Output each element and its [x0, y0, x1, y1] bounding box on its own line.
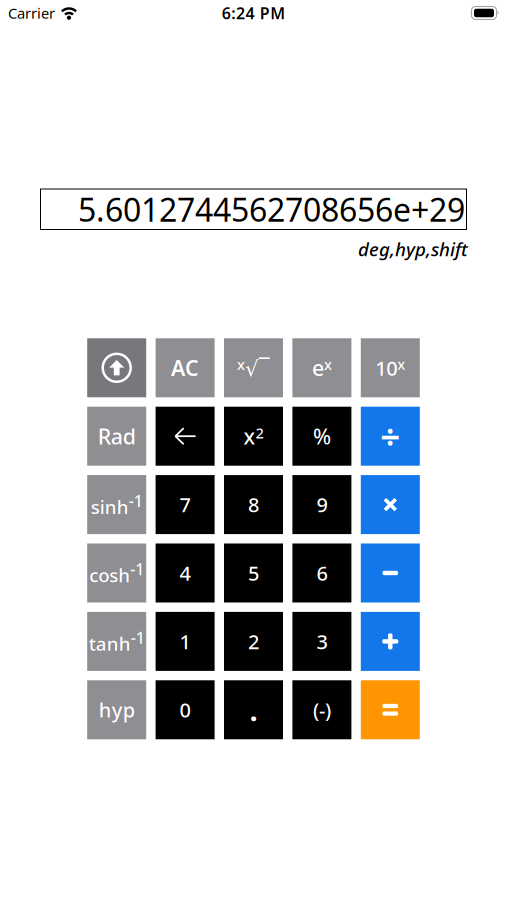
staticText: x2 — [243, 422, 263, 450]
staticText: Rad — [98, 422, 136, 450]
staticText: (-) — [313, 696, 331, 723]
staticText: 9 — [316, 491, 327, 518]
staticText: 5.6012744562708656e+29 — [78, 188, 465, 230]
button[interactable]: hyp — [87, 680, 146, 739]
button[interactable]: e to the x — [292, 338, 351, 397]
button[interactable]: Inverse hyperbolic tangent — [87, 612, 146, 671]
staticText: % — [313, 422, 331, 450]
button[interactable]: x-th root — [224, 338, 283, 397]
staticText: sinh-1 — [91, 490, 143, 519]
button[interactable]: 6 — [292, 543, 351, 602]
staticText: . — [249, 690, 257, 729]
staticText: 2 — [248, 628, 259, 655]
staticText: 7 — [180, 491, 191, 518]
staticText: 10x — [375, 354, 405, 381]
button[interactable]: Rad — [87, 407, 146, 466]
button[interactable]: Inverse hyperbolic cosine — [87, 543, 146, 602]
staticText: cosh-1 — [89, 558, 144, 587]
button[interactable]: 3 — [292, 612, 351, 671]
button[interactable]: Minus — [361, 543, 420, 602]
button[interactable]: 0 — [156, 680, 215, 739]
button[interactable]: Decimal point — [224, 680, 283, 739]
button[interactable]: 10 to the x — [361, 338, 420, 397]
button[interactable]: Equals — [361, 680, 420, 739]
staticText: ÷ — [380, 413, 400, 459]
button[interactable]: Percent — [292, 407, 351, 466]
button[interactable]: x squared — [224, 407, 283, 466]
staticText: 6:24 PM — [222, 2, 285, 24]
button[interactable]: AC — [156, 338, 215, 397]
staticText: 1 — [180, 628, 191, 655]
staticText: deg,hyp,shift — [358, 236, 468, 261]
staticText: tanh-1 — [89, 627, 145, 656]
button[interactable]: 8 — [224, 475, 283, 534]
staticText: 8 — [248, 491, 259, 518]
staticText: 6 — [316, 560, 327, 586]
button[interactable]: Shift — [87, 338, 146, 397]
staticText: x√‾ — [237, 354, 270, 382]
button[interactable]: 9 — [292, 475, 351, 534]
staticText: 3 — [316, 628, 327, 655]
staticText: ex — [312, 354, 332, 382]
button[interactable]: Inverse hyperbolic sine — [87, 475, 146, 534]
staticText: 0 — [180, 696, 191, 723]
button[interactable]: 1 — [156, 612, 215, 671]
button[interactable]: 4 — [156, 543, 215, 602]
button[interactable]: Negate — [292, 680, 351, 739]
button[interactable]: Multiply — [361, 475, 420, 534]
staticText: 5 — [248, 560, 259, 586]
button[interactable]: 2 — [224, 612, 283, 671]
staticText: hyp — [99, 696, 135, 723]
button[interactable]: Plus — [361, 612, 420, 671]
button[interactable]: 5 — [224, 543, 283, 602]
button[interactable]: Divide — [361, 407, 420, 466]
button[interactable]: 7 — [156, 475, 215, 534]
staticText: Carrier — [8, 3, 55, 23]
staticText: AC — [171, 354, 199, 382]
button[interactable]: Backspace — [156, 407, 215, 466]
staticText: 4 — [180, 560, 191, 586]
